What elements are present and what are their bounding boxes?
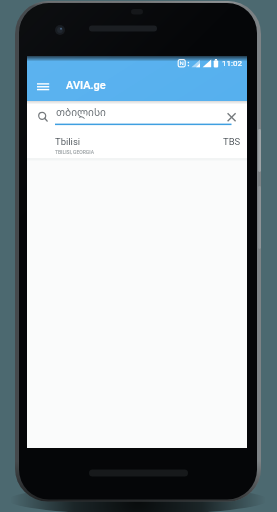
staticText: TBS (223, 136, 241, 147)
button[interactable] (50, 103, 215, 126)
staticText: TBILISI, GEORGIA (55, 149, 94, 155)
button[interactable] (27, 128, 247, 158)
button[interactable] (221, 107, 242, 127)
staticText: 11:02 (222, 59, 242, 68)
staticText: Tbilisi (55, 136, 81, 147)
staticText: AVIA.ge (66, 79, 106, 92)
button[interactable] (31, 78, 55, 98)
staticText: თბილისი (56, 105, 106, 119)
